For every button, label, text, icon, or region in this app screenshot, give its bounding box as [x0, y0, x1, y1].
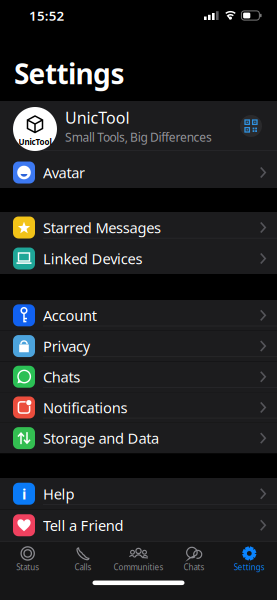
staticText: Privacy	[43, 336, 90, 356]
button[interactable]: Starred Messages	[0, 212, 277, 243]
button[interactable]: Tell a Friend	[0, 509, 277, 541]
staticText: i	[22, 484, 26, 503]
button[interactable]: Chats	[166, 546, 222, 572]
button[interactable]: Linked Devices	[0, 243, 277, 274]
button[interactable]: i	[0, 478, 277, 509]
button[interactable]: Storage and Data	[0, 423, 277, 453]
staticText: Avatar	[43, 163, 85, 182]
staticText: Storage and Data	[43, 428, 159, 448]
staticText: Chats	[43, 367, 80, 386]
staticText: Communities	[113, 562, 163, 572]
button[interactable]: QR code	[240, 115, 262, 137]
button[interactable]: Status	[0, 546, 55, 572]
staticText: Chats	[183, 562, 204, 572]
staticText: 15:52	[29, 7, 65, 24]
button[interactable]: Calls	[55, 546, 111, 572]
button[interactable]: Notifications	[0, 392, 277, 423]
staticText: Account	[43, 306, 97, 325]
staticText: Settings	[234, 562, 265, 572]
staticText: UnicTool	[18, 137, 51, 147]
staticText: Calls	[75, 562, 92, 572]
staticText: Help	[43, 484, 74, 503]
staticText: Settings	[14, 55, 124, 92]
button[interactable]: Chats	[0, 361, 277, 392]
button[interactable]: Settings	[222, 546, 277, 572]
staticText: Notifications	[43, 398, 128, 417]
button[interactable]: Communities	[111, 546, 166, 572]
staticText: UnicTool	[65, 107, 130, 128]
staticText: Starred Messages	[43, 218, 161, 237]
staticText: Small Tools, Big Differences	[65, 129, 212, 145]
button[interactable]: UnicTool	[0, 101, 277, 157]
button[interactable]: Privacy	[0, 331, 277, 361]
button[interactable]: Account	[0, 300, 277, 331]
staticText: Linked Devices	[43, 249, 142, 268]
staticText: Status	[16, 562, 39, 572]
staticText: Tell a Friend	[43, 515, 124, 535]
button[interactable]: Avatar	[0, 157, 277, 188]
